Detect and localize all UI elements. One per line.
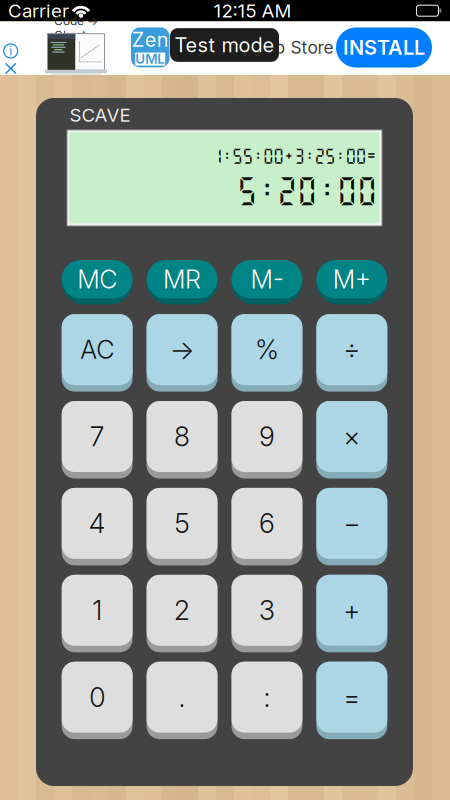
- button[interactable]: M+: [316, 260, 387, 304]
- button[interactable]: =: [316, 662, 387, 739]
- staticText: ÷: [343, 333, 360, 366]
- button[interactable]: Close ad: [4, 62, 17, 75]
- button[interactable]: 4: [62, 488, 133, 565]
- button[interactable]: ×: [316, 401, 387, 478]
- staticText: :: [263, 681, 270, 713]
- staticText: 0: [89, 681, 105, 713]
- staticText: 8: [174, 420, 190, 453]
- staticText: =: [343, 681, 360, 713]
- staticText: +: [343, 594, 360, 626]
- button[interactable]: MC: [62, 260, 133, 304]
- button[interactable]: %: [231, 314, 302, 392]
- button[interactable]: 3: [231, 575, 302, 652]
- button[interactable]: 7: [62, 401, 133, 478]
- staticText: 5:20:00: [236, 173, 377, 208]
- staticText: AC: [80, 334, 114, 365]
- staticText: MR: [163, 264, 201, 295]
- button[interactable]: 2: [147, 575, 217, 652]
- staticText: Zen: [132, 27, 169, 51]
- staticText: 6: [259, 507, 275, 540]
- button[interactable]: 6: [231, 488, 302, 565]
- button[interactable]: Code → Chart: [45, 23, 107, 75]
- staticText: M-: [250, 264, 283, 295]
- button[interactable]: INSTALL: [336, 27, 432, 67]
- button[interactable]: ÷: [316, 314, 387, 392]
- staticText: 3: [259, 594, 275, 626]
- staticText: 7: [90, 420, 105, 453]
- staticText: SCAVE: [69, 104, 130, 126]
- button[interactable]: Ad information: [4, 44, 18, 58]
- button[interactable]: :: [231, 662, 302, 739]
- staticText: INSTALL: [343, 35, 425, 60]
- button[interactable]: Zen: [131, 27, 333, 67]
- staticText: Test mode: [174, 33, 274, 57]
- staticText: −: [343, 507, 360, 540]
- staticText: 2: [174, 594, 190, 626]
- staticText: 1: [92, 594, 102, 626]
- staticText: M+: [333, 264, 371, 295]
- staticText: 4: [89, 507, 106, 540]
- staticText: i: [9, 44, 12, 58]
- staticText: Code → Chart: [54, 14, 98, 43]
- button[interactable]: 8: [147, 401, 217, 478]
- button[interactable]: M-: [231, 260, 302, 304]
- button[interactable]: 5: [147, 488, 217, 565]
- staticText: %: [255, 333, 279, 366]
- button[interactable]: AC: [62, 314, 133, 392]
- staticText: MC: [77, 264, 117, 295]
- staticText: 9: [259, 420, 275, 453]
- staticText: ZenUML App Store: [176, 37, 333, 58]
- button[interactable]: −: [316, 488, 387, 565]
- staticText: 12:15 AM: [213, 0, 291, 22]
- staticText: .: [179, 681, 186, 713]
- staticText: 5: [175, 507, 190, 540]
- button[interactable]: 9: [231, 401, 302, 478]
- staticText: ×: [343, 420, 360, 453]
- button[interactable]: 0: [62, 662, 133, 739]
- button[interactable]: 1: [62, 575, 133, 652]
- staticText: 1:55:00+3:25:00=: [211, 146, 377, 165]
- button[interactable]: .: [147, 662, 217, 739]
- button[interactable]: →: [147, 314, 217, 392]
- staticText: Carrier: [8, 0, 69, 22]
- staticText: UML: [135, 51, 165, 67]
- button[interactable]: MR: [147, 260, 217, 304]
- staticText: →: [170, 333, 195, 366]
- button[interactable]: +: [316, 575, 387, 652]
